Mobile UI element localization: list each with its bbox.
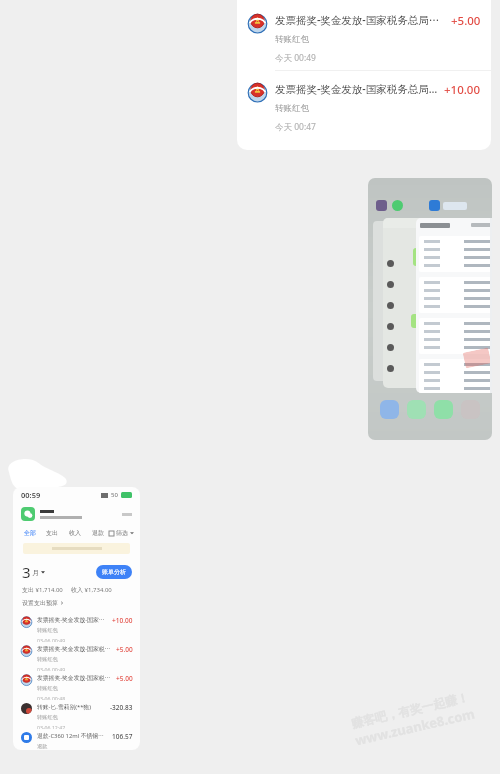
staticText: 全部 [24,529,36,537]
button[interactable]: 设置支出预算 [22,599,64,607]
staticText: 发票摇奖-奖金发放-国家税务总局重… [37,674,113,682]
staticText: +5.00 [116,645,133,654]
staticText: 退款 [37,743,48,750]
staticText: 设置支出预算 [22,599,58,607]
staticText: +10.00 [112,616,133,625]
button[interactable]: 筛选 [109,529,134,537]
staticText: 转账-匕.雪莉别(**狍) [37,703,91,711]
button[interactable]: 发票摇奖-奖金发放-国家税务总局… [13,613,140,642]
staticText: 筛选 [116,529,128,537]
staticText: 发票摇奖-奖金发放-国家税务总局… [37,616,109,624]
staticText: 月 [32,568,39,577]
button[interactable]: 发票摇奖-奖金发放-国家税务总局重… [13,671,140,700]
staticText: 赚客吧，有奖一起赚！ [350,689,470,731]
staticText: 账单分析 [102,568,126,576]
staticText: 03-06 00:49 [37,637,66,642]
staticText: 收入 [69,529,81,537]
button[interactable]: 发票摇奖-奖金发放-国家税务总局… [237,71,491,139]
staticText: 转账红包 [37,656,58,663]
staticText: 收入 ¥1,734.00 [71,586,112,594]
staticText: 转账红包 [37,714,58,721]
button[interactable]: 退款 [86,527,109,539]
staticText: 发票摇奖-奖金发放-国家税务总局重… [37,645,113,653]
staticText: 00:59 [21,490,41,500]
staticText: 转账红包 [37,685,58,692]
button[interactable] [13,503,140,525]
button[interactable]: 发票摇奖-奖金发放-国家税务总局重… [237,2,491,70]
staticText: 03-06 00:48 [37,695,66,700]
staticText: www.zuanke8.com [353,704,477,749]
staticText: 50 [111,491,118,499]
button[interactable]: 收入 [63,527,86,539]
staticText: 发票摇奖-奖金发放-国家税务总局… [275,82,438,96]
staticText: 退款 [92,529,104,537]
staticText: 转账红包 [37,627,58,634]
button[interactable]: 支出 [41,527,63,539]
staticText: 支出 ¥1,714.00 [22,586,63,594]
staticText: 转账红包 [275,103,309,114]
staticText: 今天 00:47 [275,121,316,133]
staticText: 发票摇奖-奖金发放-国家税务总局重… [275,13,445,27]
button[interactable]: 发票摇奖-奖金发放-国家税务总局重… [13,642,140,671]
staticText: +5.00 [116,674,133,683]
staticText: 转账红包 [275,34,309,45]
staticText: -320.83 [110,703,133,712]
staticText: +10.00 [444,82,481,98]
staticText: 退款-C360 12ml 不锈钢厨家餐家… [37,732,109,740]
staticText: 03-06 00:49 [37,666,66,671]
staticText: 106.57 [112,732,133,741]
staticText: 03-06 12:47 [37,724,66,729]
staticText: 支出 [46,529,58,537]
button[interactable]: 退款-C360 12ml 不锈钢厨家餐家… [13,729,140,750]
button[interactable]: 账单分析 [96,565,132,579]
button[interactable]: 转账-匕.雪莉别(**狍) [13,700,140,729]
button[interactable]: 全部 [19,527,41,539]
staticText: 今天 00:49 [275,52,316,64]
staticText: 3 [22,562,31,582]
staticText: +5.00 [451,13,481,29]
